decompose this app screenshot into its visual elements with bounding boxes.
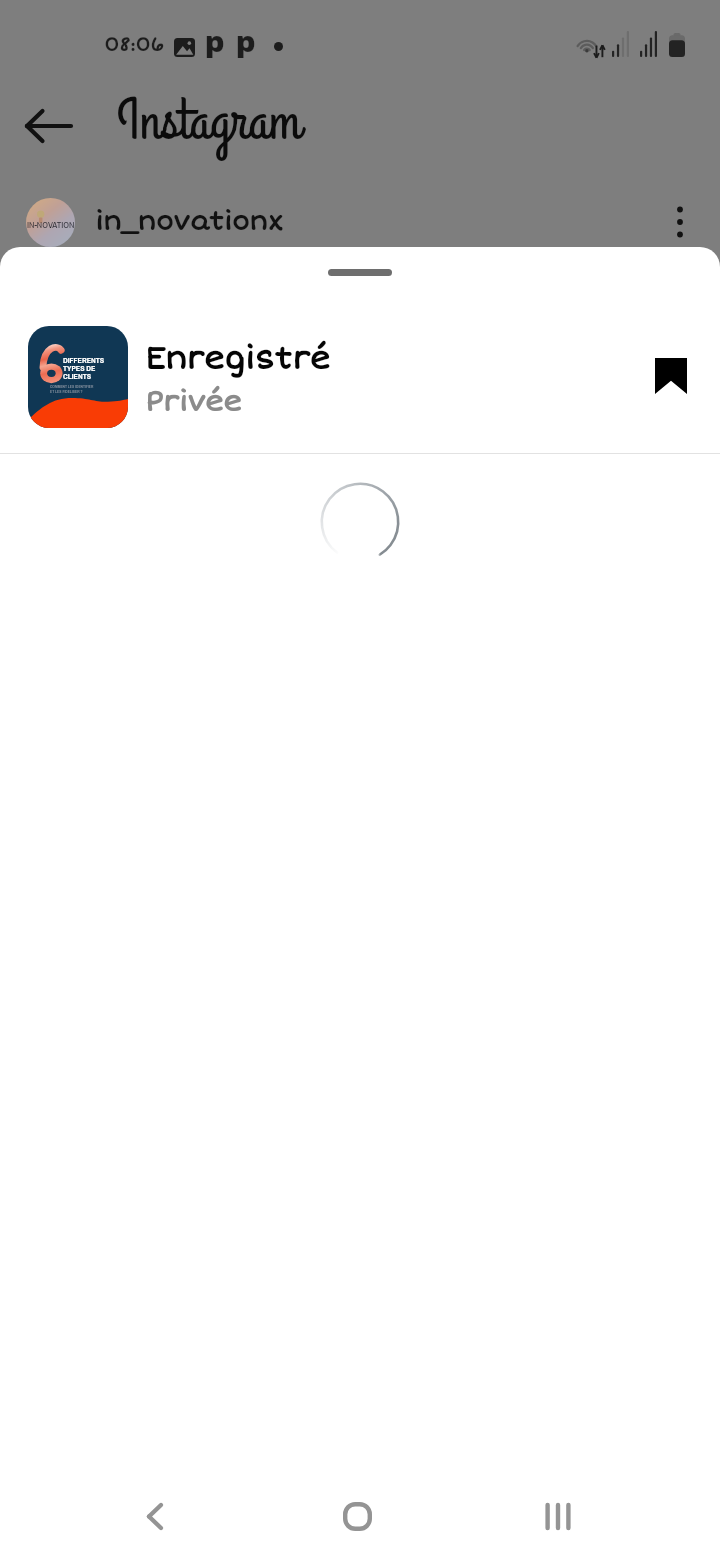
button[interactable]: DIFFERENTS TYPES DE CLIENTS [0, 307, 720, 447]
button[interactable]: More options [652, 194, 708, 250]
staticText: DIFFERENTS TYPES DE CLIENTS [63, 355, 105, 382]
staticText: Enregistré [145, 340, 330, 378]
button[interactable] [14, 186, 364, 258]
staticText: in_novationx [95, 206, 283, 238]
button[interactable]: Home [317, 1486, 397, 1546]
staticText: Instagram [117, 82, 301, 161]
staticText: IN-NOVATION [27, 219, 75, 231]
button[interactable]: Back [12, 90, 84, 162]
other: Profile picture [26, 198, 75, 247]
button[interactable]: Back [115, 1486, 195, 1546]
button[interactable]: Drag handle [328, 269, 392, 276]
button[interactable]: Saved [639, 344, 703, 408]
staticText: p [236, 27, 256, 59]
staticText: 08:06 [104, 33, 164, 56]
staticText: COMMENT LES IDENTIFIER ET LES FIDELISER … [50, 384, 94, 394]
staticText: p [205, 27, 225, 59]
button[interactable]: Recent apps [518, 1486, 598, 1546]
staticText: Privée [145, 385, 242, 419]
